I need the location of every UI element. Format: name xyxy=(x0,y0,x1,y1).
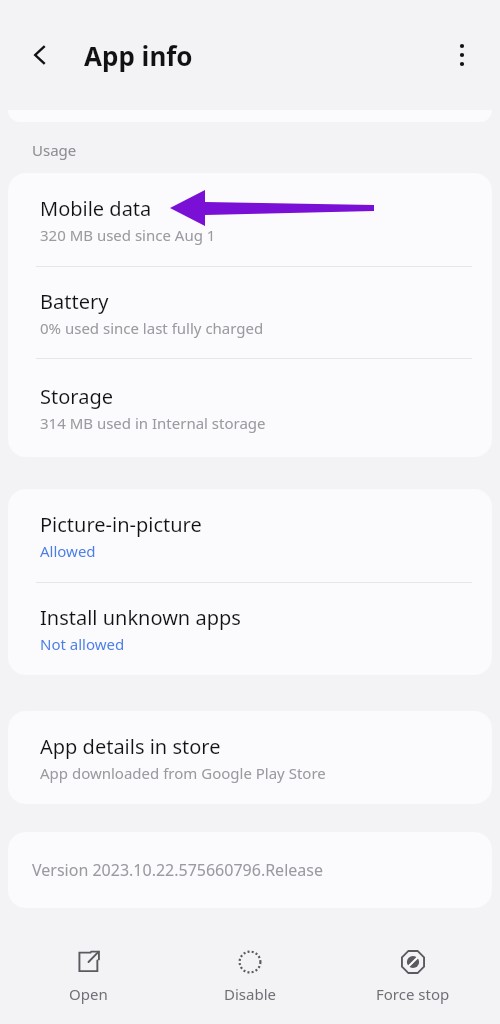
staticText: App downloaded from Google Play Store xyxy=(40,763,326,783)
staticText: Storage xyxy=(40,383,113,410)
staticText: 0% used since last fully charged xyxy=(40,318,264,338)
staticText: Open xyxy=(69,984,108,1004)
button[interactable]: App details in store xyxy=(8,711,492,804)
staticText: Disable xyxy=(224,984,276,1004)
staticText: Not allowed xyxy=(40,634,125,654)
staticText: Usage xyxy=(32,140,77,160)
staticText: Picture-in-picture xyxy=(40,511,202,538)
button[interactable]: Mobile data xyxy=(8,173,492,267)
button[interactable]: Storage xyxy=(8,359,492,457)
staticText: Mobile data xyxy=(40,195,152,222)
button[interactable]: More options xyxy=(438,31,486,79)
staticText: Force stop xyxy=(376,984,450,1004)
staticText: Version 2023.10.22.575660796.Release xyxy=(32,859,323,881)
button[interactable]: Disable xyxy=(175,943,325,1010)
button[interactable]: Picture-in-picture xyxy=(8,489,492,583)
staticText: 320 MB used since Aug 1 xyxy=(40,225,216,245)
button[interactable]: Open xyxy=(13,943,163,1010)
staticText: Allowed xyxy=(40,541,96,561)
staticText: Install unknown apps xyxy=(40,604,241,631)
staticText: App details in store xyxy=(40,733,221,760)
staticText: 314 MB used in Internal storage xyxy=(40,413,266,433)
staticText: Battery xyxy=(40,288,109,315)
button[interactable]: Install unknown apps xyxy=(8,583,492,675)
button[interactable]: Battery xyxy=(8,267,492,359)
staticText: App info xyxy=(84,38,193,73)
button[interactable]: Back xyxy=(16,31,64,79)
button[interactable]: Force stop xyxy=(338,943,488,1010)
